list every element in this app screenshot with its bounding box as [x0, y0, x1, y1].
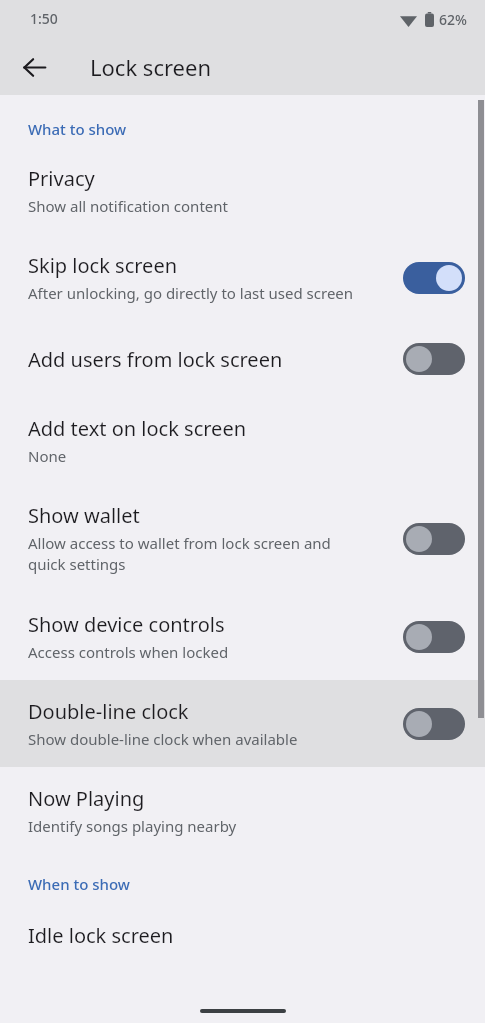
button[interactable]: Now Playing — [0, 767, 485, 854]
staticText: Add users from lock screen — [28, 346, 283, 373]
staticText: Show all notification content — [28, 196, 228, 216]
staticText: When to show — [28, 874, 130, 894]
staticText: Privacy — [28, 165, 95, 192]
button[interactable] — [403, 343, 465, 375]
staticText: None — [28, 446, 67, 466]
staticText: Show device controls — [28, 611, 225, 638]
staticText: Identify songs playing nearby — [28, 816, 237, 836]
staticText: Now Playing — [28, 785, 145, 812]
button[interactable]: Skip lock screen — [0, 234, 485, 321]
button[interactable]: Idle lock screen — [0, 908, 485, 973]
button[interactable]: Show device controls — [0, 593, 485, 680]
staticText: 1:50 — [30, 9, 58, 28]
button[interactable]: Double-line clock — [0, 680, 485, 767]
staticText: Allow access to wallet from lock screen … — [28, 533, 331, 575]
staticText: Show double-line clock when available — [28, 729, 298, 749]
staticText: Skip lock screen — [28, 252, 178, 279]
staticText: Show wallet — [28, 502, 140, 529]
staticText: Idle lock screen — [28, 922, 174, 949]
staticText: After unlocking, go directly to last use… — [28, 283, 354, 303]
staticText: 62% — [439, 10, 467, 29]
staticText: Add text on lock screen — [28, 415, 247, 442]
button[interactable]: Show wallet — [0, 484, 485, 593]
button[interactable]: Back — [10, 43, 58, 91]
button[interactable] — [403, 621, 465, 653]
staticText: Double-line clock — [28, 698, 189, 725]
staticText: What to show — [28, 119, 127, 139]
button[interactable]: Add users from lock screen — [0, 321, 485, 397]
staticText: Access controls when locked — [28, 642, 229, 662]
staticText: Lock screen — [90, 52, 212, 82]
button[interactable]: Privacy — [0, 151, 485, 234]
button[interactable] — [403, 262, 465, 294]
button[interactable] — [403, 523, 465, 555]
button[interactable]: Add text on lock screen — [0, 397, 485, 484]
button[interactable] — [403, 708, 465, 740]
